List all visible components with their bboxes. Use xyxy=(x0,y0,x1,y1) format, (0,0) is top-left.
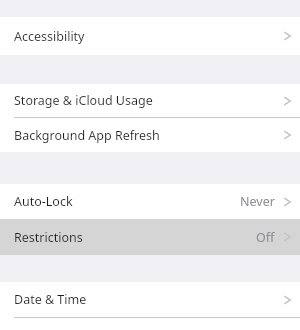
staticText: Date & Time xyxy=(14,291,87,308)
staticText: Never xyxy=(240,193,275,210)
staticText: Storage & iCloud Usage xyxy=(14,92,153,109)
staticText: Restrictions xyxy=(14,229,83,246)
staticText: Auto-Lock xyxy=(14,193,73,210)
button[interactable]: Accessibility xyxy=(0,17,300,55)
button[interactable]: Auto-Lock xyxy=(0,184,300,219)
button[interactable]: Date & Time xyxy=(0,282,300,317)
button[interactable]: Background App Refresh xyxy=(0,118,300,152)
staticText: Background App Refresh xyxy=(14,127,160,144)
button[interactable]: Storage & iCloud Usage xyxy=(0,84,300,117)
staticText: Off xyxy=(256,229,275,246)
button[interactable]: Restrictions xyxy=(0,219,300,255)
staticText: Accessibility xyxy=(14,28,85,45)
